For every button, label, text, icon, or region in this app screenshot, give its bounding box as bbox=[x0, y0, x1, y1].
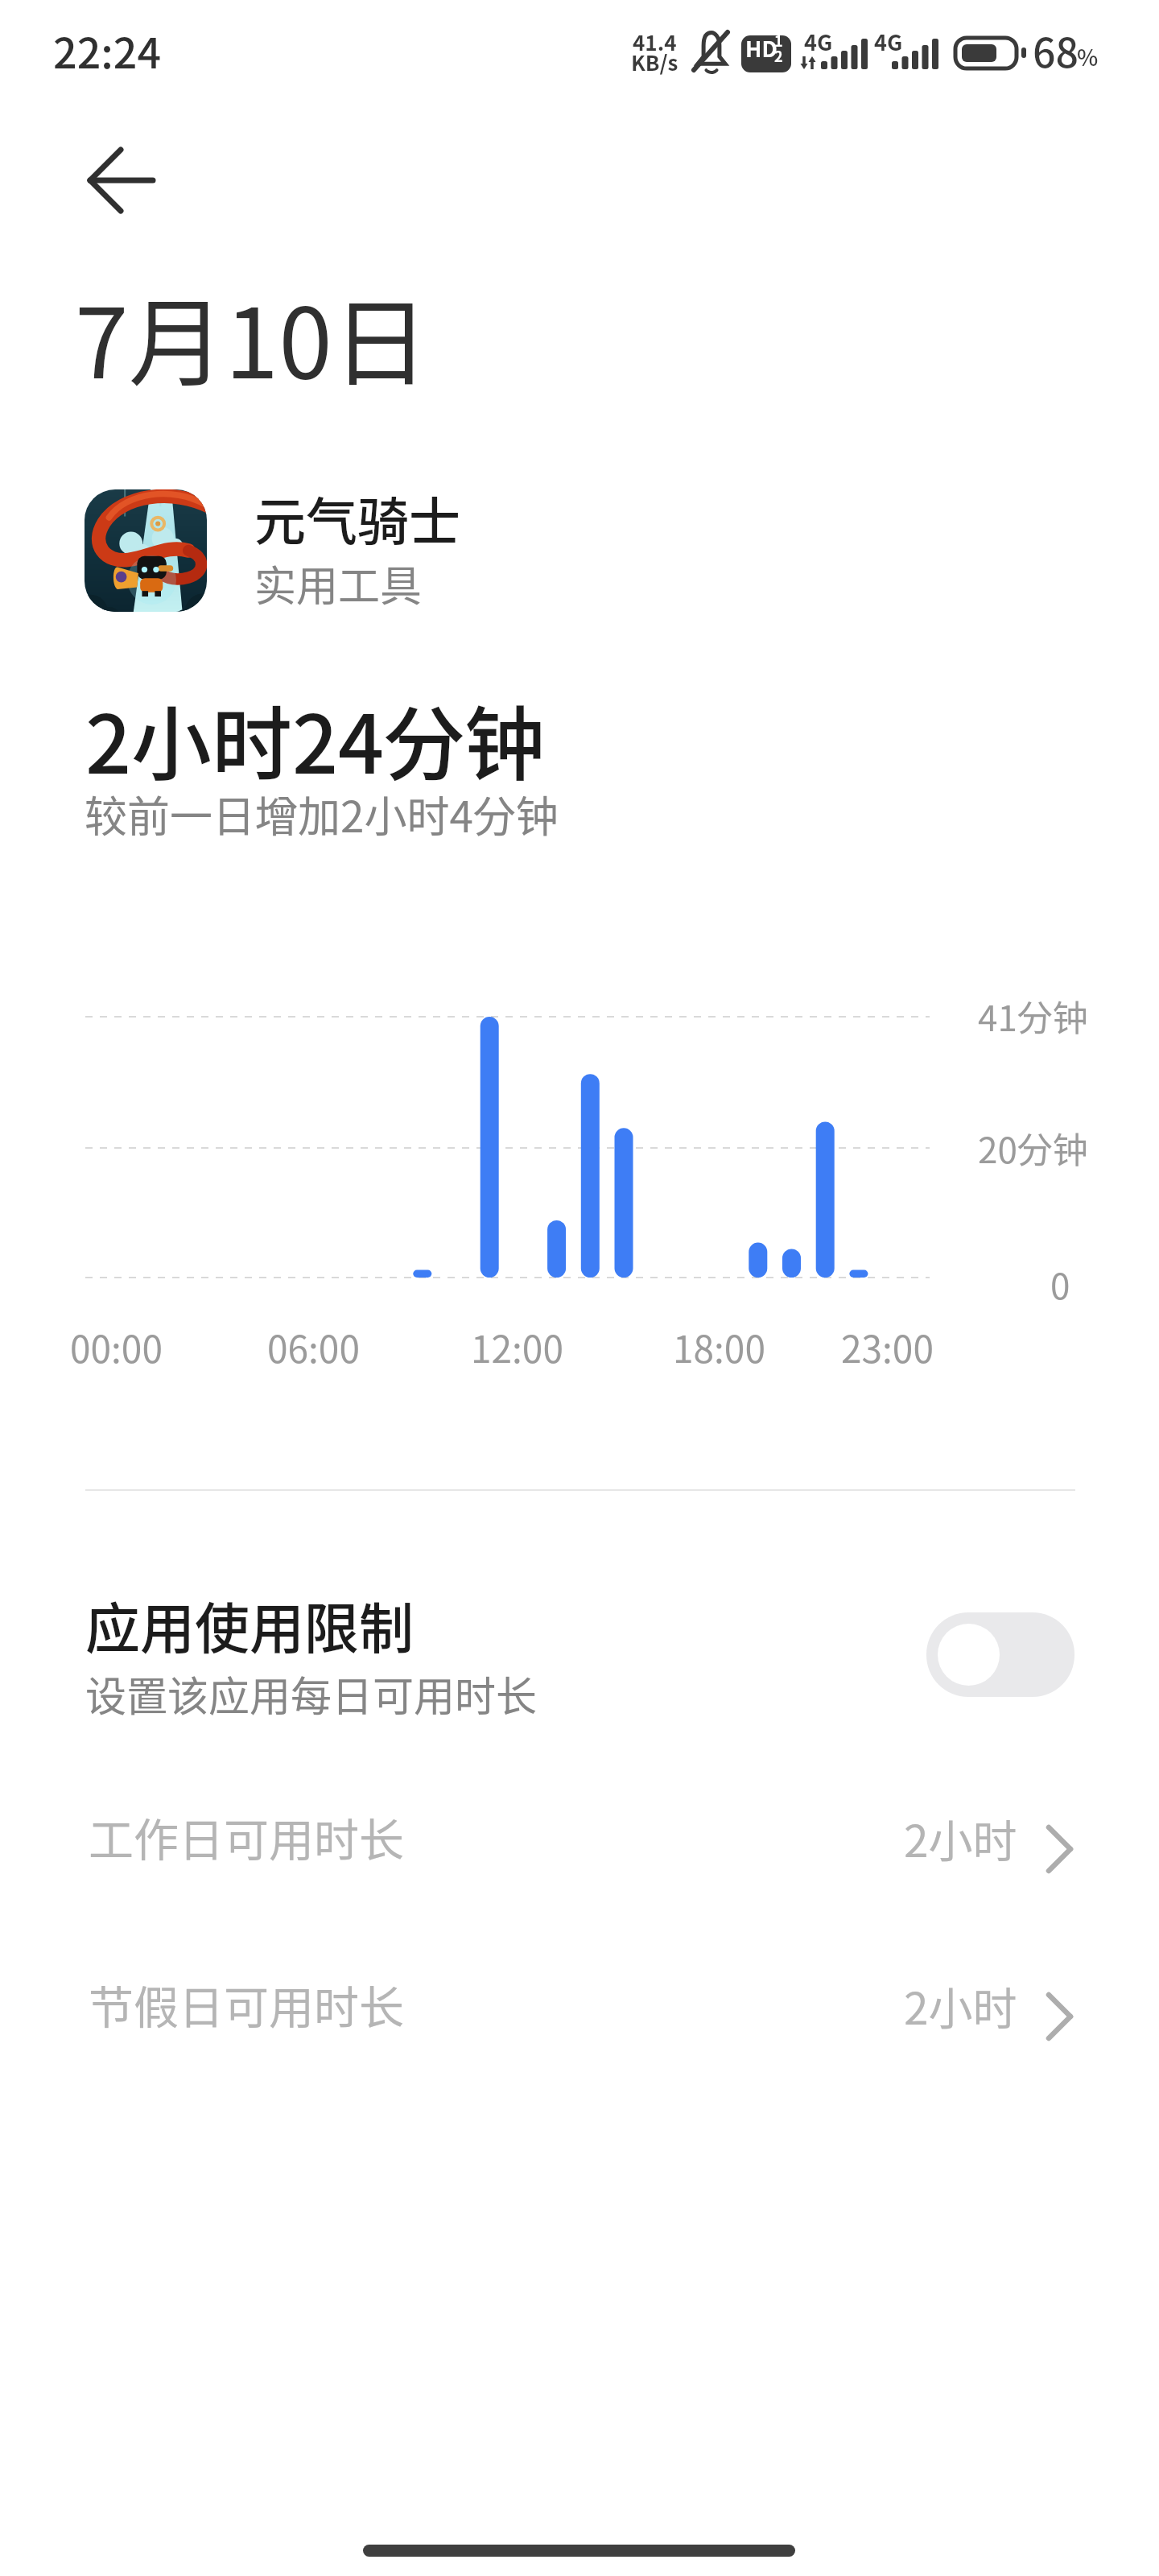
staticText: 工作日可用时长 bbox=[89, 1804, 404, 1869]
staticText: 节假日可用时长 bbox=[89, 1971, 404, 2037]
staticText: 12:00 bbox=[471, 1320, 563, 1374]
staticText: 23:00 bbox=[841, 1320, 934, 1374]
staticText: 应用使用限制 bbox=[85, 1585, 415, 1664]
staticText: % bbox=[1077, 40, 1099, 73]
staticText: 06:00 bbox=[267, 1320, 360, 1374]
staticText: 4G bbox=[874, 26, 903, 57]
staticText: 元气骑士 bbox=[254, 481, 460, 555]
staticText: 设置该应用每日可用时长 bbox=[85, 1664, 538, 1724]
button[interactable] bbox=[72, 1803, 1087, 1900]
staticText: 22:24 bbox=[53, 20, 162, 80]
staticText: 2小时 bbox=[904, 1973, 1017, 2037]
staticText: 18:00 bbox=[673, 1320, 765, 1374]
staticText: 41分钟 bbox=[978, 990, 1088, 1042]
staticText: 1 bbox=[774, 30, 783, 51]
staticText: 实用工具 bbox=[254, 553, 423, 613]
button[interactable] bbox=[72, 1971, 1087, 2067]
staticText: 较前一日增加2小时4分钟 bbox=[85, 783, 559, 845]
button[interactable] bbox=[72, 1578, 1087, 1723]
staticText: 2小时 bbox=[904, 1806, 1017, 1870]
staticText: 0 bbox=[1050, 1258, 1070, 1310]
staticText: 20分钟 bbox=[978, 1122, 1088, 1174]
staticText: KB/s bbox=[631, 47, 678, 77]
staticText: 41.4 bbox=[633, 27, 677, 57]
staticText: 2 bbox=[774, 45, 783, 66]
staticText: 2小时24分钟 bbox=[85, 680, 545, 797]
staticText: 68 bbox=[1033, 21, 1079, 79]
staticText: 00:00 bbox=[70, 1320, 163, 1374]
button[interactable] bbox=[72, 475, 555, 624]
staticText: HD bbox=[745, 32, 777, 64]
button[interactable] bbox=[926, 1612, 1074, 1697]
staticText: 4G bbox=[804, 26, 833, 57]
button[interactable] bbox=[68, 141, 173, 221]
staticText: 7月10日 bbox=[75, 266, 429, 407]
